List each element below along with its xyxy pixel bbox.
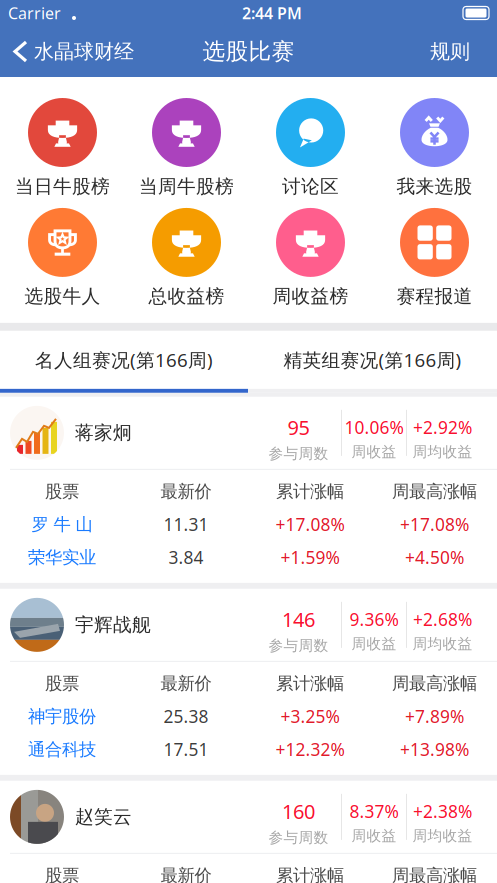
staticText: +17.08% [275, 513, 344, 536]
button[interactable]: 总收益榜 [124, 208, 248, 308]
staticText: 周收益 [351, 827, 396, 845]
staticText: 荣华实业 [28, 547, 96, 568]
button[interactable]: 蒋家炯 [0, 397, 497, 469]
staticText: 水晶球财经 [34, 39, 134, 64]
staticText: 8.37% [349, 800, 398, 823]
staticText: +12.32% [275, 738, 344, 761]
staticText: 我来选股 [396, 175, 472, 198]
button[interactable]: 当日牛股榜 [0, 98, 124, 198]
staticText: 当周牛股榜 [139, 175, 234, 198]
staticText: 最新价 [160, 673, 211, 694]
staticText: 周收益 [351, 635, 396, 653]
staticText: +2.38% [413, 800, 472, 823]
staticText: +2.68% [413, 608, 472, 631]
button[interactable]: 讨论区 [248, 98, 372, 198]
staticText: 赛程报道 [396, 285, 472, 308]
staticText: +13.98% [400, 738, 469, 761]
staticText: 累计涨幅 [276, 865, 344, 883]
button[interactable]: 规则 [430, 39, 497, 64]
staticText: 周均收益 [412, 635, 472, 653]
staticText: +3.25% [280, 705, 339, 728]
staticText: 周均收益 [412, 827, 472, 845]
staticText: +4.50% [405, 546, 464, 569]
staticText: 参与周数 [268, 445, 328, 463]
staticText: 选股比赛 [202, 38, 294, 65]
staticText: 周均收益 [412, 443, 472, 461]
staticText: 周收益榜 [272, 285, 348, 308]
staticText: 周最高涨幅 [392, 865, 477, 883]
staticText: +17.08% [400, 513, 469, 536]
staticText: 9.36% [349, 608, 398, 631]
staticText: 累计涨幅 [276, 673, 344, 694]
staticText: 规则 [430, 39, 470, 64]
staticText: 选股牛人 [24, 285, 100, 308]
staticText: 95 [287, 414, 309, 441]
button[interactable]: 周收益榜 [248, 208, 372, 308]
staticText: 周最高涨幅 [392, 673, 477, 694]
staticText: 146 [282, 606, 315, 633]
staticText: 蒋家炯 [75, 421, 132, 444]
staticText: 3.84 [168, 546, 203, 569]
button[interactable]: 赛程报道 [372, 208, 496, 308]
staticText: 罗 牛 山 [31, 514, 92, 535]
button[interactable]: 精英组赛况(第166周) [248, 331, 497, 389]
staticText: 参与周数 [268, 829, 328, 847]
staticText: 神宇股份 [28, 706, 96, 727]
staticText: 讨论区 [282, 175, 339, 198]
staticText: +2.92% [413, 416, 472, 439]
staticText: 股票 [45, 673, 79, 694]
staticText: 股票 [45, 865, 79, 883]
staticText: 160 [282, 798, 315, 825]
staticText: 10.06% [344, 416, 403, 439]
staticText: 2:44 PM [242, 2, 302, 24]
staticText: 参与周数 [268, 637, 328, 655]
button[interactable]: 我来选股 [372, 98, 496, 198]
staticText: 周收益 [351, 443, 396, 461]
staticText: 11.31 [163, 513, 208, 536]
staticText: 名人组赛况(第166周) [35, 347, 213, 372]
staticText: 25.38 [163, 705, 208, 728]
button[interactable]: 选股牛人 [0, 208, 124, 308]
staticText: 最新价 [160, 481, 211, 502]
staticText: 当日牛股榜 [15, 175, 110, 198]
staticText: 通合科技 [28, 739, 96, 760]
button[interactable]: 当周牛股榜 [124, 98, 248, 198]
staticText: 股票 [45, 481, 79, 502]
staticText: 17.51 [163, 738, 208, 761]
staticText: 赵笑云 [75, 805, 132, 828]
staticText: 总收益榜 [148, 285, 224, 308]
staticText: +7.89% [405, 705, 464, 728]
button[interactable]: 水晶球财经 [0, 39, 134, 64]
staticText: Carrier [8, 2, 61, 24]
staticText: 最新价 [160, 865, 211, 883]
staticText: +1.59% [280, 546, 339, 569]
button[interactable]: 宇辉战舰 [0, 589, 497, 661]
button[interactable]: 赵笑云 [0, 781, 497, 853]
staticText: 周最高涨幅 [392, 481, 477, 502]
staticText: 宇辉战舰 [75, 613, 151, 636]
button[interactable]: 名人组赛况(第166周) [0, 331, 248, 389]
staticText: 累计涨幅 [276, 481, 344, 502]
staticText: 精英组赛况(第166周) [283, 347, 461, 372]
